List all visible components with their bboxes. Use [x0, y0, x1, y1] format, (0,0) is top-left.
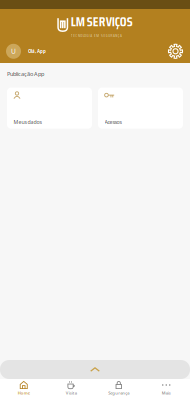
button[interactable]: Home — [0, 379, 47, 400]
staticText: LM SERVIÇOS — [71, 11, 133, 32]
staticText: U — [11, 47, 16, 56]
button[interactable]: Mais — [142, 379, 190, 400]
staticText: Visita — [66, 390, 77, 396]
button[interactable]: Acessos — [98, 88, 183, 129]
staticText: TECNOLOGIA EM SEGURANÇA — [71, 33, 122, 39]
staticText: Mais — [162, 390, 171, 396]
button[interactable]: Visita — [47, 379, 95, 400]
staticText: Home — [18, 390, 30, 396]
button[interactable]: Settings — [165, 41, 186, 62]
button[interactable]: Meus dados — [7, 88, 92, 129]
button[interactable]: Expand — [0, 360, 190, 379]
button[interactable]: Segurança — [95, 379, 142, 400]
staticText: Acessos — [104, 118, 121, 126]
staticText: Olá, App — [28, 48, 46, 54]
staticText: Segurança — [108, 390, 129, 396]
staticText: Meus dados — [13, 118, 41, 126]
staticText: Publicação App — [7, 70, 44, 78]
